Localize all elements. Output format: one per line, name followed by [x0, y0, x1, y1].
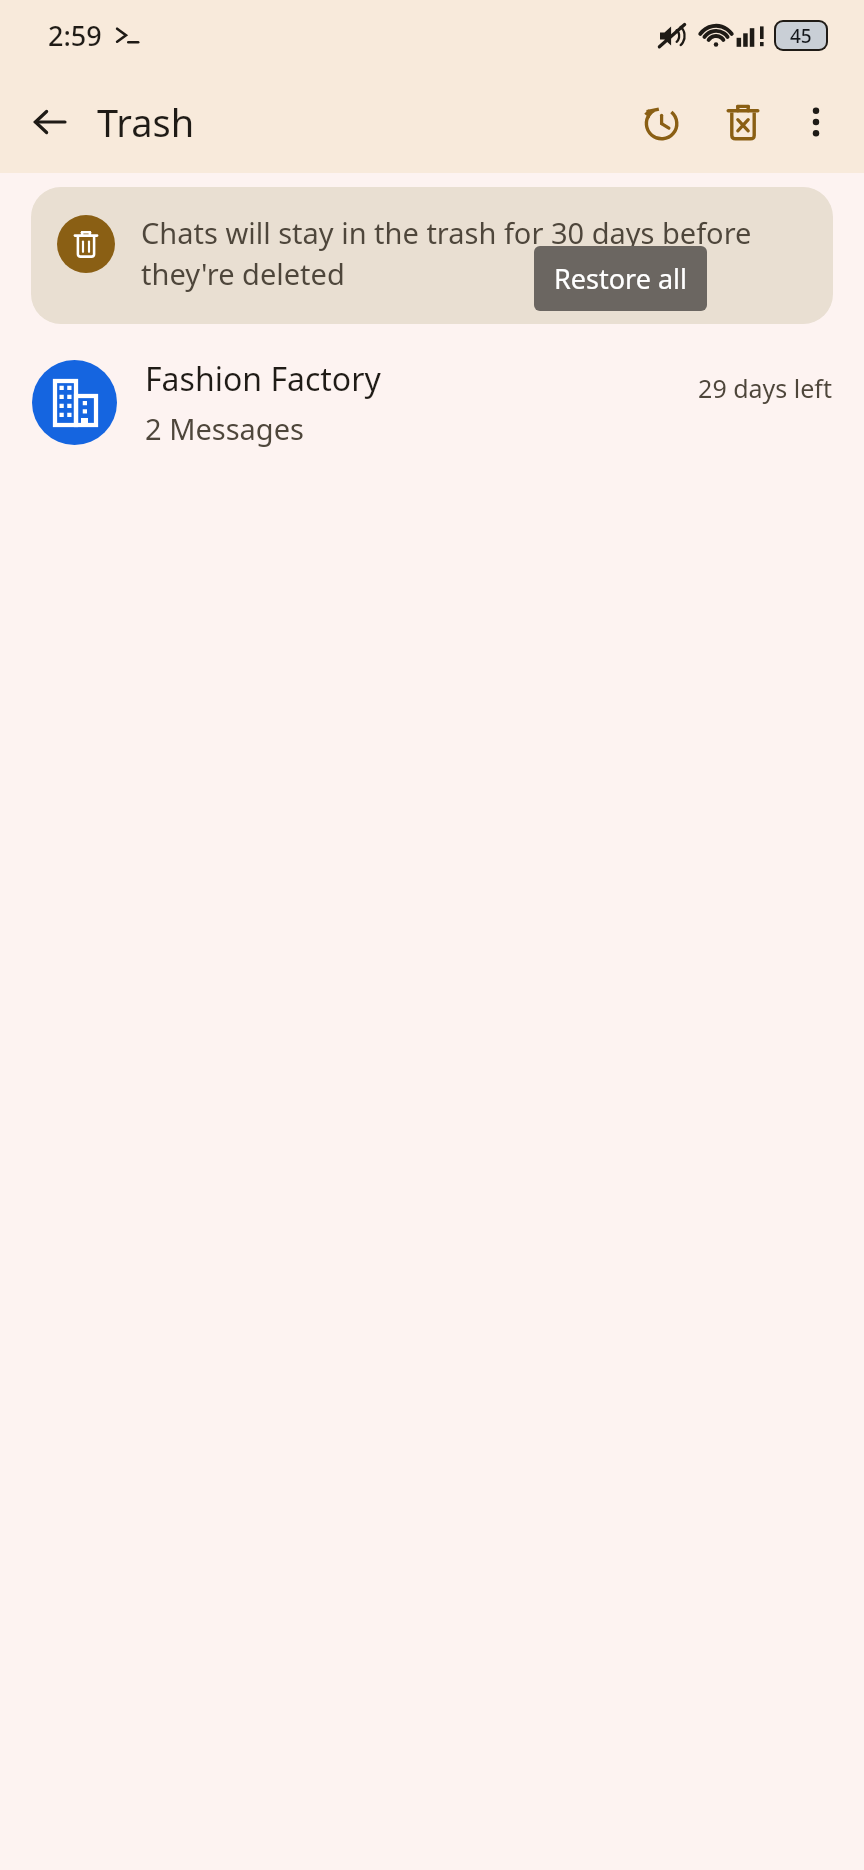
button[interactable]: Back	[22, 94, 78, 150]
button[interactable]: Empty trash	[712, 91, 774, 153]
staticText: 29 days left	[698, 371, 832, 405]
staticText: 2 Messages	[145, 409, 304, 448]
staticText: Restore all	[554, 260, 687, 297]
staticText: Chats will stay in the trash for 30 days…	[141, 213, 807, 294]
staticText: Trash	[97, 96, 195, 148]
staticText: 2:59	[48, 17, 102, 54]
button[interactable]: Fashion Factory	[0, 341, 864, 464]
button[interactable]: Chats will stay in the trash for 30 days…	[31, 187, 833, 324]
button[interactable]: Restore all	[629, 91, 691, 153]
button[interactable]: More options	[788, 94, 844, 150]
staticText: Fashion Factory	[145, 357, 381, 401]
staticText: 45	[790, 23, 812, 49]
